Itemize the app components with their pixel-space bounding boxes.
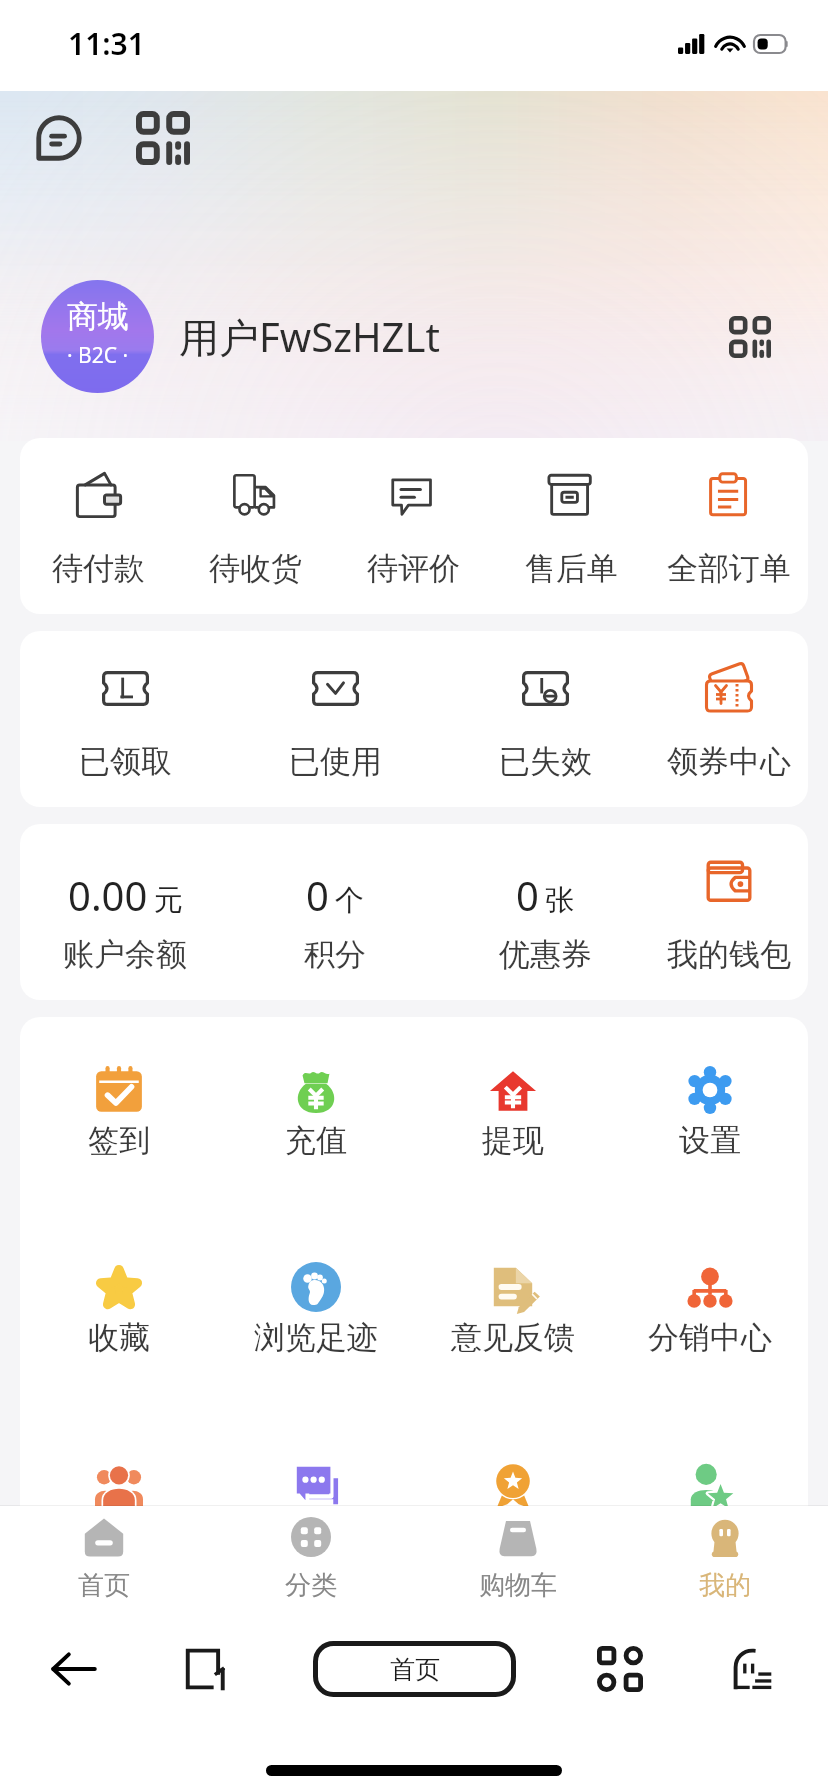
button[interactable]: 充值: [217, 1064, 414, 1261]
button[interactable]: 消息通知: [217, 1458, 414, 1612]
staticText: 我的团队: [57, 1515, 181, 1554]
button[interactable]: 我的: [621, 1517, 828, 1602]
button[interactable]: 邀请好友: [611, 1458, 808, 1612]
button[interactable]: 待收货: [177, 438, 334, 614]
button[interactable]: 已失效: [440, 631, 650, 807]
button[interactable]: 购物车: [414, 1517, 621, 1602]
staticText: 11:31: [68, 23, 145, 64]
staticText: 待收货: [209, 549, 302, 588]
staticText: 首页: [390, 1654, 440, 1685]
staticText: 提现: [482, 1121, 544, 1160]
button[interactable]: 分类: [207, 1517, 414, 1602]
staticText: 0.00: [68, 868, 148, 922]
staticText: 签到: [88, 1121, 150, 1160]
button[interactable]: QR code: [720, 307, 780, 367]
staticText: 待付款: [52, 549, 145, 588]
staticText: 意见反馈: [451, 1318, 575, 1357]
button[interactable]: Messages: [24, 103, 94, 173]
staticText: 收藏: [88, 1318, 150, 1357]
staticText: 设置: [679, 1121, 741, 1160]
staticText: 个: [335, 882, 364, 919]
staticText: 账户余额: [63, 935, 187, 974]
staticText: 0: [306, 868, 329, 922]
button[interactable]: 我的钱包: [650, 824, 808, 1000]
button[interactable]: 领券中心: [650, 631, 808, 807]
staticText: 邀请好友: [648, 1515, 772, 1554]
button[interactable]: Scan: [128, 103, 198, 173]
staticText: 分类: [285, 1569, 337, 1602]
button[interactable]: 首页: [313, 1641, 516, 1697]
button[interactable]: 待付款: [20, 438, 177, 614]
button[interactable]: Tabs: [178, 1639, 238, 1699]
staticText: 充值: [285, 1121, 347, 1160]
button[interactable]: 全部订单: [650, 438, 808, 614]
button[interactable]: 浏览足迹: [217, 1261, 414, 1458]
button[interactable]: More: [724, 1639, 784, 1699]
button[interactable]: 售后单: [492, 438, 650, 614]
staticText: 优惠券: [499, 935, 592, 974]
staticText: 待评价: [367, 549, 460, 588]
staticText: 积分: [304, 935, 366, 974]
button[interactable]: 待评价: [334, 438, 492, 614]
staticText: 已失效: [499, 742, 592, 781]
staticText: 张: [545, 882, 574, 919]
button[interactable]: 商城: [41, 280, 154, 393]
button[interactable]: 设置: [611, 1064, 808, 1261]
button[interactable]: 我的团队: [20, 1458, 217, 1612]
staticText: 商城: [67, 297, 129, 336]
button[interactable]: 提现: [414, 1064, 611, 1261]
button[interactable]: 首页: [0, 1517, 207, 1602]
staticText: 我的: [699, 1569, 751, 1602]
button[interactable]: 0: [440, 824, 650, 1000]
staticText: 我的钱包: [667, 935, 791, 974]
staticText: · B2C ·: [67, 341, 129, 370]
staticText: 0: [516, 868, 539, 922]
staticText: 消息通知: [254, 1515, 378, 1554]
staticText: 分销中心: [648, 1318, 772, 1357]
staticText: 已使用: [289, 742, 382, 781]
staticText: 已领取: [79, 742, 172, 781]
button[interactable]: 已使用: [230, 631, 440, 807]
button[interactable]: 意见反馈: [414, 1261, 611, 1458]
button[interactable]: 收藏: [20, 1261, 217, 1458]
staticText: 全部订单: [667, 549, 791, 588]
button[interactable]: 分销中心: [611, 1261, 808, 1458]
button[interactable]: 签到: [20, 1064, 217, 1261]
button[interactable]: 0.00: [20, 824, 230, 1000]
staticText: 首页: [78, 1569, 130, 1602]
staticText: 售后单: [525, 549, 618, 588]
button[interactable]: 会员中心: [414, 1458, 611, 1612]
staticText: 领券中心: [667, 742, 791, 781]
staticText: 元: [154, 882, 183, 919]
button[interactable]: Back: [44, 1639, 104, 1699]
button[interactable]: 已领取: [20, 631, 230, 807]
staticText: 购物车: [479, 1569, 557, 1602]
button[interactable]: 0: [230, 824, 440, 1000]
staticText: 会员中心: [451, 1515, 575, 1554]
button[interactable]: Apps: [590, 1639, 650, 1699]
staticText: 用户FwSzHZLt: [179, 309, 440, 364]
staticText: 浏览足迹: [254, 1318, 378, 1357]
